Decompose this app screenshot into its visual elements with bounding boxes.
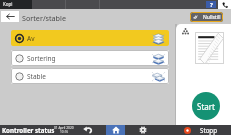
button[interactable]: Stopp	[183, 125, 226, 135]
button[interactable]: Back	[78, 125, 96, 135]
staticText: Start	[197, 101, 215, 112]
button[interactable]: Help	[206, 1, 216, 8]
button[interactable]: Home	[106, 125, 125, 135]
button[interactable]: Back	[1, 11, 19, 22]
staticText: Sortering	[27, 54, 56, 63]
staticText: Kontroller status	[2, 126, 55, 134]
staticText: ?	[210, 1, 213, 8]
button[interactable]: Phone	[218, 0, 231, 9]
staticText: 01 April 2020	[54, 126, 74, 130]
staticText: Nullstill	[203, 14, 221, 21]
staticText: Av	[27, 34, 35, 43]
staticText: Stable	[27, 72, 46, 81]
button[interactable]: Nullstill	[190, 12, 223, 22]
button[interactable]: Start	[192, 92, 220, 120]
staticText: 10:16	[60, 130, 69, 134]
button[interactable]: Kopi	[0, 0, 32, 9]
button[interactable]: Av	[11, 30, 169, 46]
button[interactable]: Stable	[11, 68, 169, 84]
staticText: Kopi	[3, 1, 13, 7]
button[interactable]: Kontroller status	[0, 125, 57, 135]
staticText: Stopp	[200, 126, 217, 134]
button[interactable]: Settings	[133, 125, 152, 135]
staticText: Sorter/stable	[22, 13, 66, 23]
button[interactable]: Sortering	[11, 50, 169, 66]
